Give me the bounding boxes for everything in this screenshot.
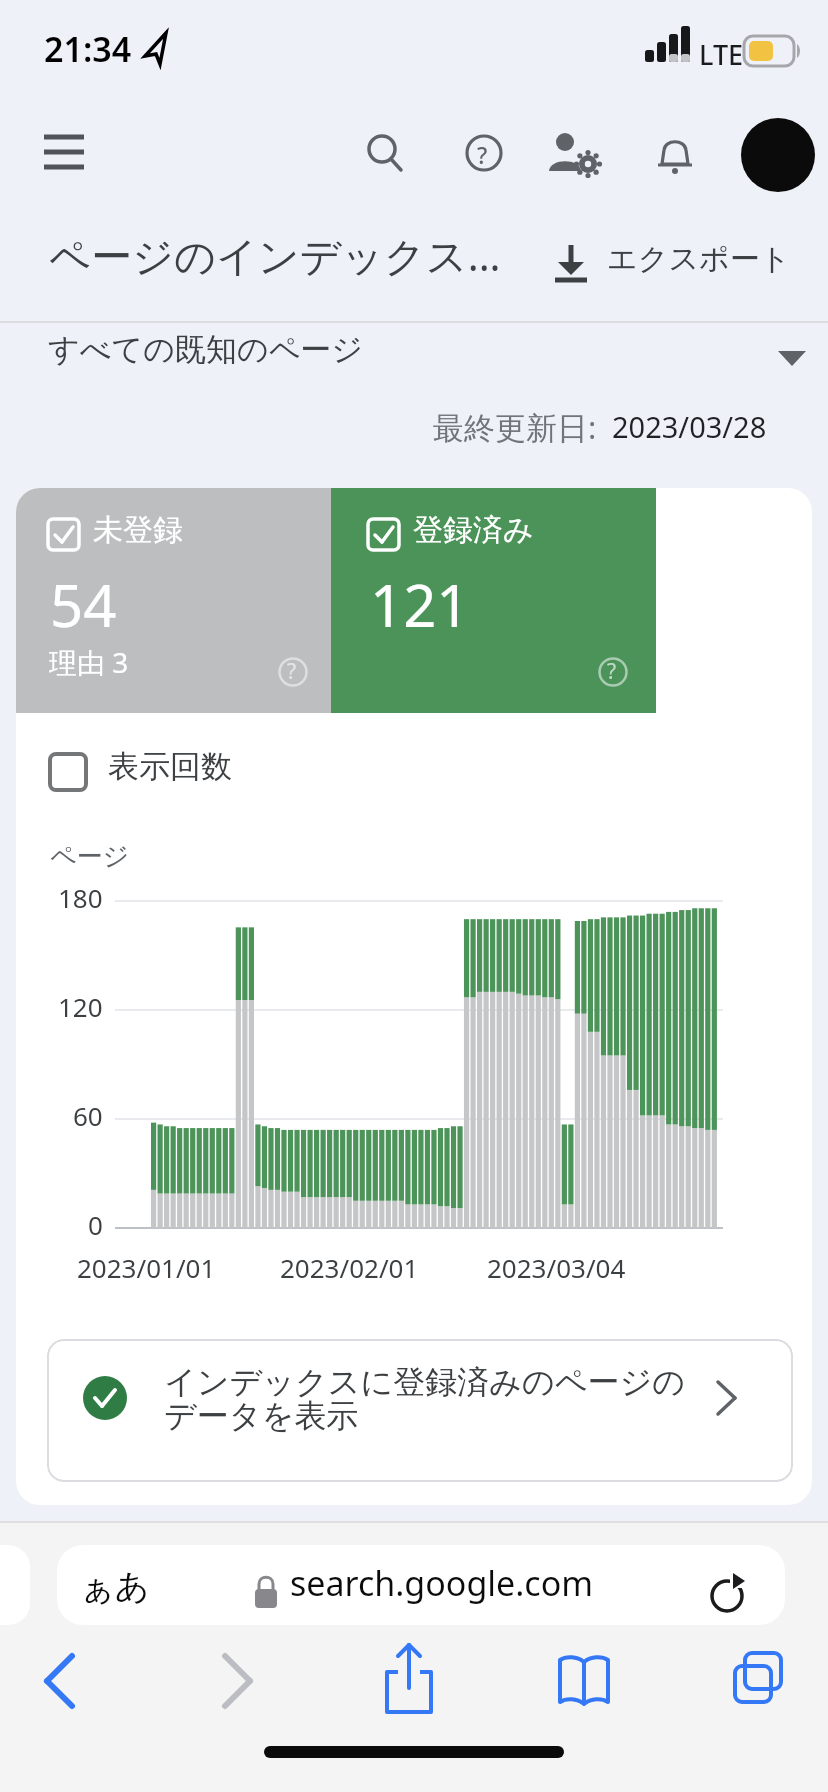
button[interactable]: [554, 1645, 614, 1715]
button[interactable]: [40, 330, 810, 378]
staticText: 0: [88, 1207, 103, 1242]
button[interactable]: [30, 1645, 90, 1715]
staticText: 121: [370, 565, 470, 644]
staticText: 2023/03/28: [612, 407, 767, 446]
staticText: 2023/03/04: [487, 1250, 626, 1285]
button[interactable]: [728, 1645, 788, 1715]
staticText: 180: [58, 880, 103, 915]
button[interactable]: [741, 118, 815, 192]
staticText: ?: [287, 657, 297, 686]
button[interactable]: [16, 488, 331, 713]
staticText: 登録済み: [413, 511, 534, 549]
staticText: 2023/02/01: [280, 1250, 419, 1285]
staticText: 表示回数: [108, 747, 232, 786]
staticText: 理由 3: [49, 643, 129, 681]
button[interactable]: [207, 1645, 267, 1715]
button[interactable]: [44, 748, 244, 796]
staticText: 最終更新日:: [433, 406, 605, 448]
staticText: エクスポート: [607, 240, 791, 278]
staticText: LTE: [699, 36, 744, 73]
staticText: ページ: [50, 840, 130, 873]
button[interactable]: [650, 128, 698, 176]
staticText: 2023/01/01: [77, 1250, 216, 1285]
button[interactable]: [460, 128, 508, 176]
staticText: 未登録: [93, 511, 183, 549]
staticText: ?: [607, 657, 617, 686]
button[interactable]: [545, 238, 795, 288]
staticText: 60: [73, 1098, 103, 1133]
staticText: 21:34: [44, 26, 132, 72]
staticText: インデックスに登録済みのページの: [164, 1362, 685, 1402]
button[interactable]: [36, 130, 92, 180]
button[interactable]: [379, 1640, 439, 1718]
button[interactable]: [331, 488, 656, 713]
staticText: 120: [58, 989, 103, 1024]
staticText: すべての既知のページ: [48, 330, 364, 369]
button[interactable]: [550, 128, 598, 176]
staticText: search.google.com: [290, 1560, 594, 1606]
staticText: ページのインデックス...: [49, 227, 501, 283]
button[interactable]: [360, 128, 408, 176]
staticText: データを表示: [164, 1396, 359, 1436]
button[interactable]: [57, 1545, 785, 1625]
staticText: ?: [477, 139, 488, 170]
staticText: ぁあ: [80, 1565, 150, 1608]
button[interactable]: [47, 1339, 793, 1482]
staticText: 54: [50, 565, 117, 644]
